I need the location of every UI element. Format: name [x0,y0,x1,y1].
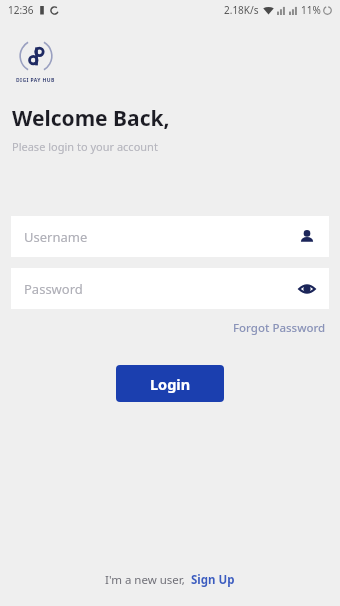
button[interactable]: Password [11,268,329,309]
staticText: Sign Up [191,572,235,588]
staticText: Login [150,374,191,394]
button[interactable]: Sign Up [190,570,236,590]
staticText: Password [24,280,298,298]
staticText: I'm a new user, [105,572,185,588]
staticText: Username [24,228,298,246]
staticText: DIGI PAY HUB [16,77,55,84]
staticText: 2.18K/s [224,3,259,17]
staticText: Welcome Back, [12,104,170,133]
other: Show password [298,280,316,298]
staticText: Please login to your account [12,139,158,154]
button[interactable]: Login [116,365,224,402]
staticText: 12:36 [8,3,34,17]
button[interactable]: Username [11,216,329,257]
staticText: 11% [301,3,321,17]
button[interactable]: Forgot Password [231,317,328,339]
other: Username [298,228,316,246]
staticText: Forgot Password [233,320,326,336]
